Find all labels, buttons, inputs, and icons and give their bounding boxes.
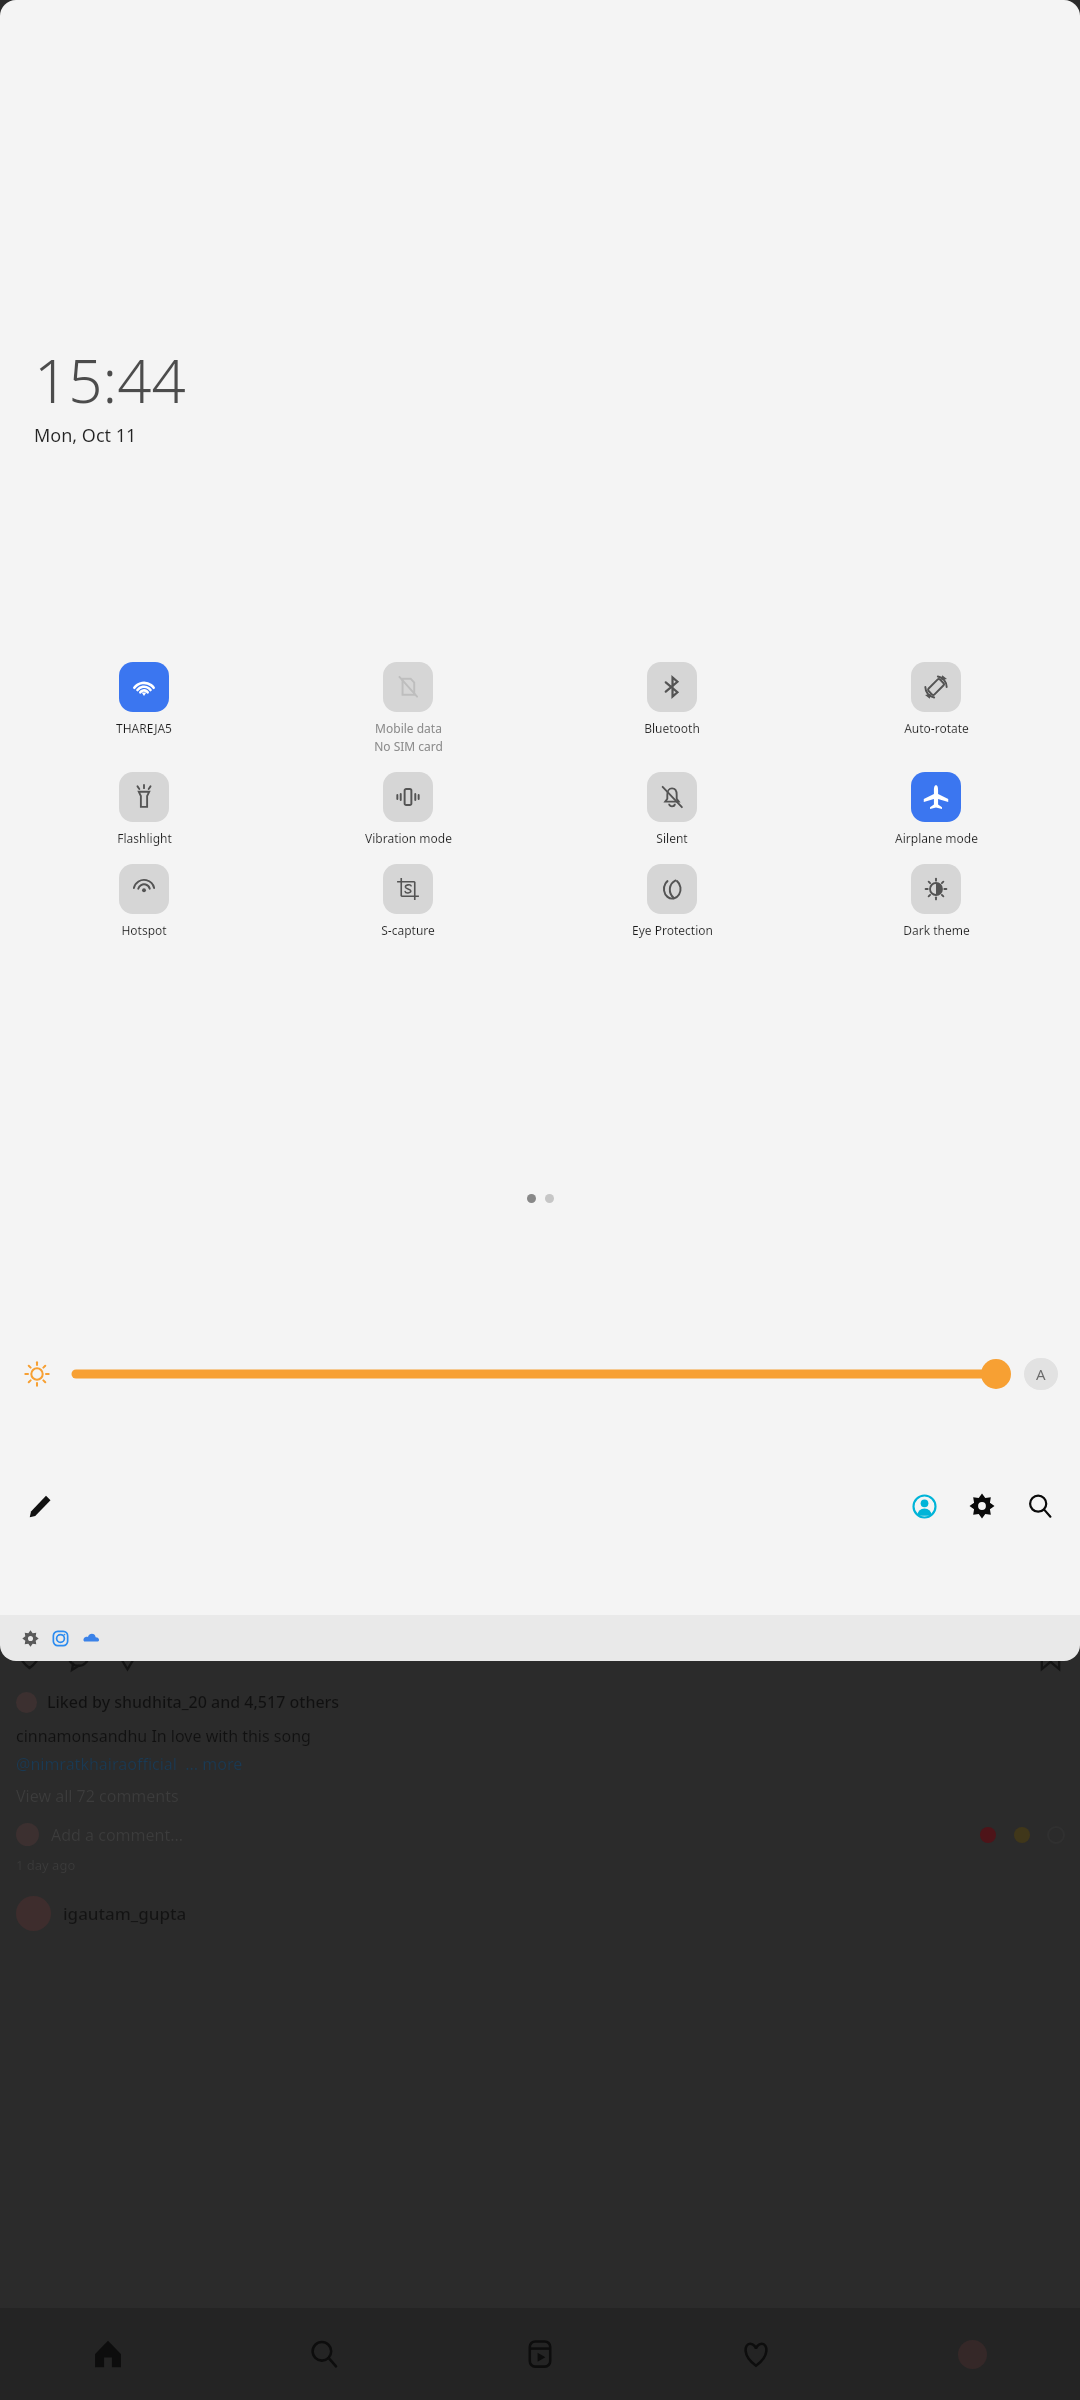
staticText: Hotspot — [121, 922, 167, 938]
button[interactable]: Hotspot — [12, 861, 276, 941]
button[interactable]: Flashlight — [12, 769, 276, 849]
staticText: A — [1036, 1364, 1046, 1384]
button[interactable]: User account — [902, 1484, 946, 1528]
staticText: Eye Protection — [632, 922, 713, 938]
button[interactable]: Search — [1018, 1484, 1062, 1528]
staticText: Dark theme — [903, 922, 970, 938]
staticText: Auto-rotate — [904, 720, 969, 736]
staticText: Bluetooth — [644, 720, 700, 736]
button[interactable]: Profile — [864, 2308, 1080, 2400]
staticText: No SIM card — [374, 738, 443, 754]
staticText: Vibration mode — [365, 830, 452, 846]
staticText: THAREJA5 — [116, 720, 172, 736]
staticText: cinnamonsandhu In love with this song — [16, 1725, 311, 1747]
button[interactable]: Settings — [960, 1484, 1004, 1528]
button[interactable]: Mobile data — [276, 659, 540, 757]
button[interactable]: Auto-rotate — [804, 659, 1068, 739]
button[interactable]: Edit — [18, 1484, 62, 1528]
staticText: Add a comment... — [51, 1824, 184, 1846]
button[interactable]: Bluetooth — [540, 659, 804, 739]
staticText: View all 72 comments — [16, 1785, 179, 1807]
button[interactable]: Silent — [540, 769, 804, 849]
staticText: Airplane mode — [895, 830, 978, 846]
button[interactable]: A — [1024, 1358, 1058, 1390]
button[interactable]: Airplane mode — [804, 769, 1068, 849]
staticText: 15:44 — [34, 339, 186, 421]
staticText: Mon, Oct 11 — [34, 423, 137, 448]
button[interactable]: Brightness — [74, 1358, 1012, 1390]
staticText: Liked by shudhita_20 and 4,517 others — [47, 1691, 340, 1713]
button[interactable]: THAREJA5 — [12, 659, 276, 739]
button[interactable]: Eye Protection — [540, 861, 804, 941]
button[interactable]: Vibration mode — [276, 769, 540, 849]
button[interactable]: Home — [0, 2308, 216, 2400]
staticText: Mobile data — [375, 720, 442, 736]
staticText: igautam_gupta — [63, 1902, 187, 1925]
staticText: S-capture — [381, 922, 435, 938]
staticText: 1 day ago — [16, 1856, 76, 1874]
staticText: Silent — [656, 830, 688, 846]
staticText: Flashlight — [117, 830, 172, 846]
button[interactable]: Dark theme — [804, 861, 1068, 941]
staticText: @nimratkhairaofficial ... more — [16, 1753, 243, 1775]
button[interactable]: S-capture — [276, 861, 540, 941]
